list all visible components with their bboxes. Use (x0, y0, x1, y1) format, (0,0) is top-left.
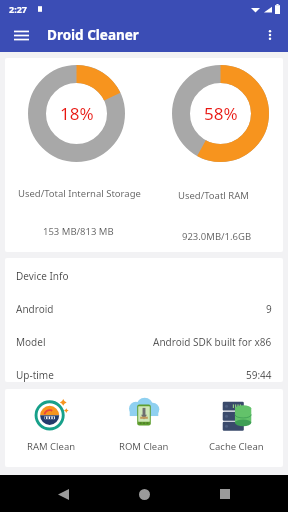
staticText: 153 MB/813 MB (43, 225, 114, 238)
button[interactable]: Home (131, 481, 157, 507)
button[interactable]: Back (50, 481, 76, 507)
button[interactable]: ROM Clean (97, 389, 190, 467)
staticText: 18% (60, 102, 94, 125)
staticText: Cache Clean (209, 440, 264, 453)
staticText: Used/Toatl RAM (178, 189, 249, 202)
staticText: Android (16, 302, 54, 316)
staticText: RAM Clean (27, 440, 76, 453)
button[interactable]: Menu (8, 22, 34, 48)
button[interactable]: Recents (212, 481, 238, 507)
button[interactable]: Cache Clean (190, 389, 283, 467)
staticText: Android SDK built for x86 (153, 335, 272, 349)
staticText: ROM Clean (119, 440, 169, 453)
staticText: 923.0MB/1.6GB (182, 230, 252, 243)
staticText: Droid Cleaner (47, 26, 139, 44)
staticText: Model (16, 335, 46, 349)
staticText: Device Info (16, 269, 69, 283)
staticText: 2:27 (9, 3, 27, 15)
staticText: Up-time (16, 368, 54, 382)
staticText: Used/Total Internal Storage (18, 187, 141, 200)
staticText: 59:44 (246, 368, 272, 382)
button[interactable]: RAM Clean (5, 389, 97, 467)
button[interactable]: More options (257, 22, 283, 48)
staticText: 9 (266, 302, 272, 316)
staticText: 58% (204, 102, 238, 125)
